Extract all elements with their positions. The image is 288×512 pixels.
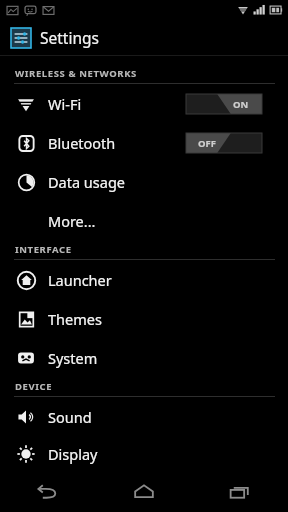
- staticText: Sound: [48, 407, 92, 427]
- button[interactable]: Bluetooth: [0, 123, 288, 162]
- staticText: Themes: [48, 309, 102, 329]
- button[interactable]: On: [186, 94, 262, 114]
- staticText: OFF: [198, 137, 216, 150]
- staticText: Wi-Fi: [48, 94, 82, 114]
- button[interactable]: Back: [0, 472, 96, 512]
- button[interactable]: Home: [96, 472, 192, 512]
- button[interactable]: Wi-Fi: [0, 84, 288, 123]
- button[interactable]: Data usage: [0, 162, 288, 201]
- staticText: System: [48, 348, 98, 368]
- button[interactable]: Off: [186, 133, 262, 153]
- staticText: Bluetooth: [48, 133, 116, 153]
- button[interactable]: Recents: [192, 472, 288, 512]
- button[interactable]: Sound: [0, 397, 288, 436]
- staticText: More...: [48, 211, 96, 231]
- staticText: Settings: [40, 27, 99, 48]
- button[interactable]: More...: [0, 201, 288, 240]
- button[interactable]: System: [0, 338, 288, 377]
- button[interactable]: Themes: [0, 299, 288, 338]
- staticText: Launcher: [48, 270, 112, 290]
- staticText: Data usage: [48, 172, 125, 192]
- staticText: WIRELESS & NETWORKS: [15, 67, 137, 80]
- staticText: Display: [48, 444, 98, 464]
- staticText: INTERFACE: [15, 243, 72, 256]
- staticText: DEVICE: [15, 380, 53, 393]
- button[interactable]: Display: [0, 436, 288, 472]
- staticText: ON: [233, 98, 249, 111]
- button[interactable]: Launcher: [0, 260, 288, 299]
